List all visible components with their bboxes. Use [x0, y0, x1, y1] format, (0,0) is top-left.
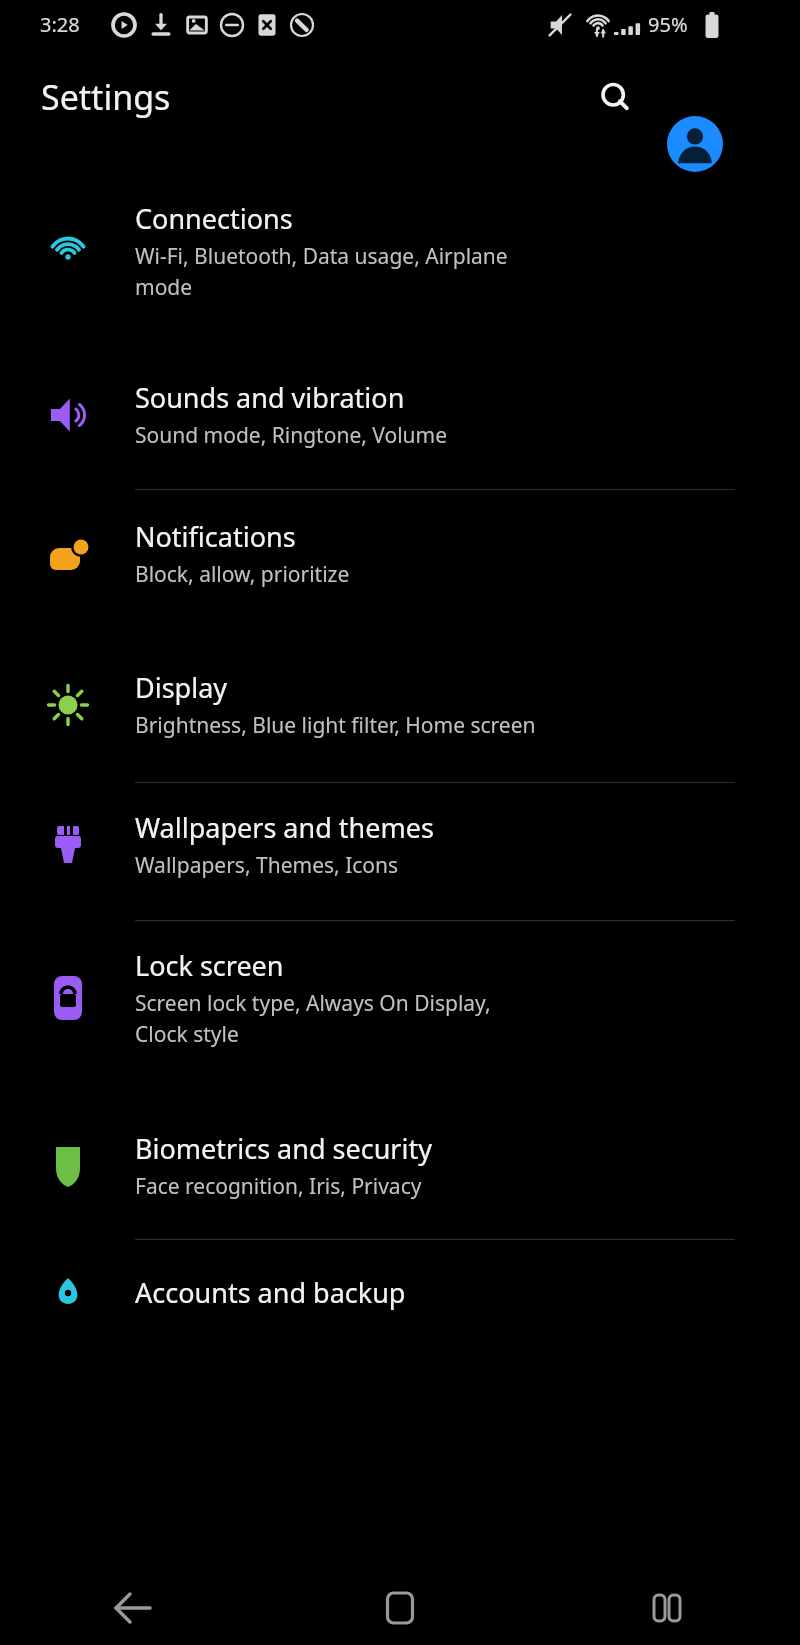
button[interactable]: Biometrics and security	[0, 1130, 800, 1201]
button[interactable]: Back	[0, 1570, 266, 1645]
button[interactable]: Connections	[0, 148, 800, 301]
staticText: Sound mode, Ringtone, Volume	[135, 421, 448, 450]
button[interactable]: Sounds and vibration	[0, 379, 800, 450]
button[interactable]: Recents	[534, 1570, 800, 1645]
button[interactable]: Notifications	[0, 518, 800, 589]
staticText: 3:28	[40, 11, 80, 38]
staticText: Lock screen	[135, 947, 284, 984]
staticText: Wallpapers and themes	[135, 809, 434, 846]
staticText: Wallpapers, Themes, Icons	[135, 851, 399, 880]
staticText: Wi-Fi, Bluetooth, Data usage, Airplane m…	[135, 242, 508, 301]
button[interactable]: Wallpapers and themes	[0, 809, 800, 880]
staticText: Screen lock type, Always On Display, Clo…	[135, 989, 491, 1048]
staticText: Display	[135, 669, 228, 706]
button[interactable]: Lock screen	[0, 947, 800, 1048]
button[interactable]: Accounts and backup	[0, 1266, 800, 1318]
button[interactable]: Search	[583, 65, 647, 129]
staticText: Block, allow, prioritize	[135, 560, 350, 589]
staticText: 95%	[648, 11, 688, 38]
staticText: Notifications	[135, 518, 296, 555]
staticText: Brightness, Blue light filter, Home scre…	[135, 711, 536, 740]
staticText: Biometrics and security	[135, 1130, 432, 1167]
staticText: Accounts and backup	[135, 1274, 406, 1311]
staticText: Settings	[41, 74, 171, 120]
button[interactable]: Account	[667, 116, 723, 172]
button[interactable]: Home	[266, 1570, 534, 1645]
staticText: Connections	[135, 200, 293, 237]
staticText: Sounds and vibration	[135, 379, 405, 416]
button[interactable]: Display	[0, 669, 800, 740]
staticText: Face recognition, Iris, Privacy	[135, 1172, 422, 1201]
